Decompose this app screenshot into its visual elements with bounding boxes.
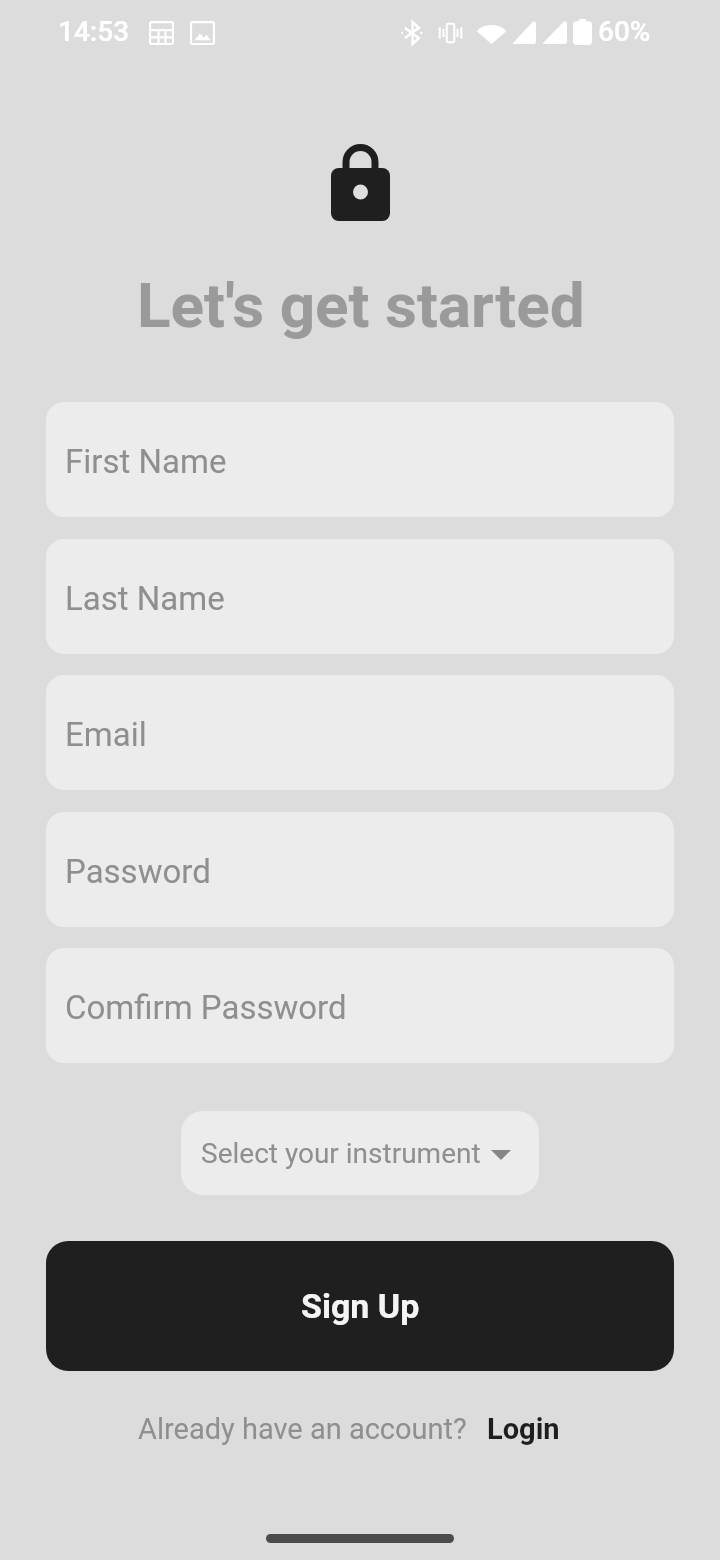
staticText: Email (65, 715, 147, 754)
button[interactable]: Comfirm Password (46, 948, 674, 1063)
staticText: Login (487, 1412, 560, 1446)
staticText: Password (65, 852, 211, 891)
button[interactable]: Sign Up (46, 1241, 674, 1371)
button[interactable]: Password (46, 812, 674, 927)
staticText: Last Name (65, 579, 225, 618)
button[interactable]: Select your instrument (181, 1111, 539, 1195)
button[interactable]: Last Name (46, 539, 674, 654)
staticText: 14:53 (58, 15, 130, 48)
staticText: Let's get started (137, 269, 585, 342)
staticText: 60% (598, 15, 651, 48)
button[interactable]: Login (487, 1412, 560, 1446)
other: Lock (331, 144, 390, 221)
staticText: First Name (65, 442, 227, 481)
button[interactable]: Email (46, 675, 674, 790)
staticText: Comfirm Password (65, 988, 347, 1027)
staticText: Sign Up (301, 1286, 420, 1326)
staticText: Already have an account? (138, 1412, 467, 1446)
button[interactable]: First Name (46, 402, 674, 517)
staticText: Select your instrument (201, 1137, 481, 1170)
